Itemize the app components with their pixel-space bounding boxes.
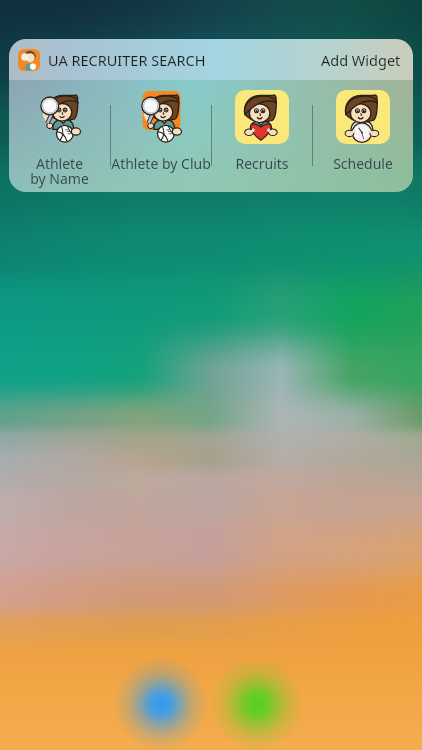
button[interactable]: Add Widget: [321, 50, 401, 70]
staticText: Athlete by Name: [30, 154, 89, 188]
button[interactable]: Recruits: [212, 80, 312, 173]
staticText: UA RECRUITER SEARCH: [48, 50, 206, 70]
button[interactable]: Athlete by Name: [9, 80, 110, 188]
staticText: Recruits: [235, 154, 289, 173]
staticText: Schedule: [333, 154, 393, 173]
button[interactable]: Schedule: [313, 80, 413, 173]
button[interactable]: Athlete by Club: [111, 80, 211, 173]
staticText: Athlete by Club: [111, 154, 211, 173]
